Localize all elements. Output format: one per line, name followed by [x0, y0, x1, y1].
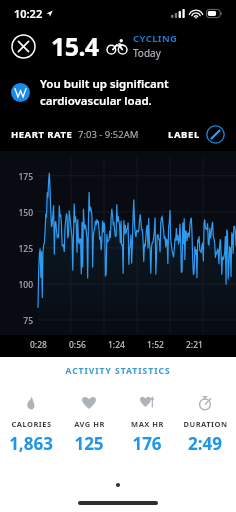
staticText: 10:22	[14, 6, 43, 21]
staticText: You built up significant	[40, 76, 169, 92]
staticText: 1:52	[147, 339, 164, 351]
button[interactable]: AVG HR	[62, 396, 116, 455]
staticText: LABEL	[168, 128, 200, 141]
button[interactable]: You built up significant	[11, 76, 225, 109]
staticText: 125	[7, 243, 33, 255]
staticText: 150	[7, 207, 33, 219]
staticText: 1,863	[9, 432, 53, 455]
button[interactable]: CALORIES	[4, 396, 58, 455]
staticText: 100	[7, 279, 33, 291]
staticText: 1:24	[108, 339, 125, 351]
staticText: 125	[74, 432, 104, 455]
staticText: 7:03 - 9:52AM	[78, 128, 139, 141]
staticText: AVG HR	[74, 419, 105, 429]
staticText: 176	[132, 432, 162, 455]
staticText: CYCLING	[133, 32, 178, 45]
staticText: 0:28	[30, 339, 47, 351]
staticText: DURATION	[183, 419, 228, 429]
button[interactable]: MAX HR	[120, 396, 174, 455]
button[interactable]: Edit label	[168, 125, 225, 144]
button[interactable]: DURATION	[178, 396, 232, 455]
staticText: 0:56	[69, 339, 86, 351]
staticText: 175	[7, 171, 33, 183]
staticText: 2:49	[188, 432, 222, 455]
staticText: HEART RATE	[11, 128, 73, 141]
staticText: MAX HR	[131, 419, 164, 429]
staticText: 2:21	[186, 339, 203, 351]
staticText: ACTIVITY STATISTICS	[0, 365, 236, 377]
staticText: 75	[7, 315, 33, 327]
staticText: 15.4	[51, 29, 99, 63]
staticText: cardiovascular load.	[40, 93, 152, 109]
button[interactable]: Close	[11, 34, 36, 59]
staticText: Today	[133, 46, 161, 60]
staticText: CALORIES	[11, 419, 52, 429]
